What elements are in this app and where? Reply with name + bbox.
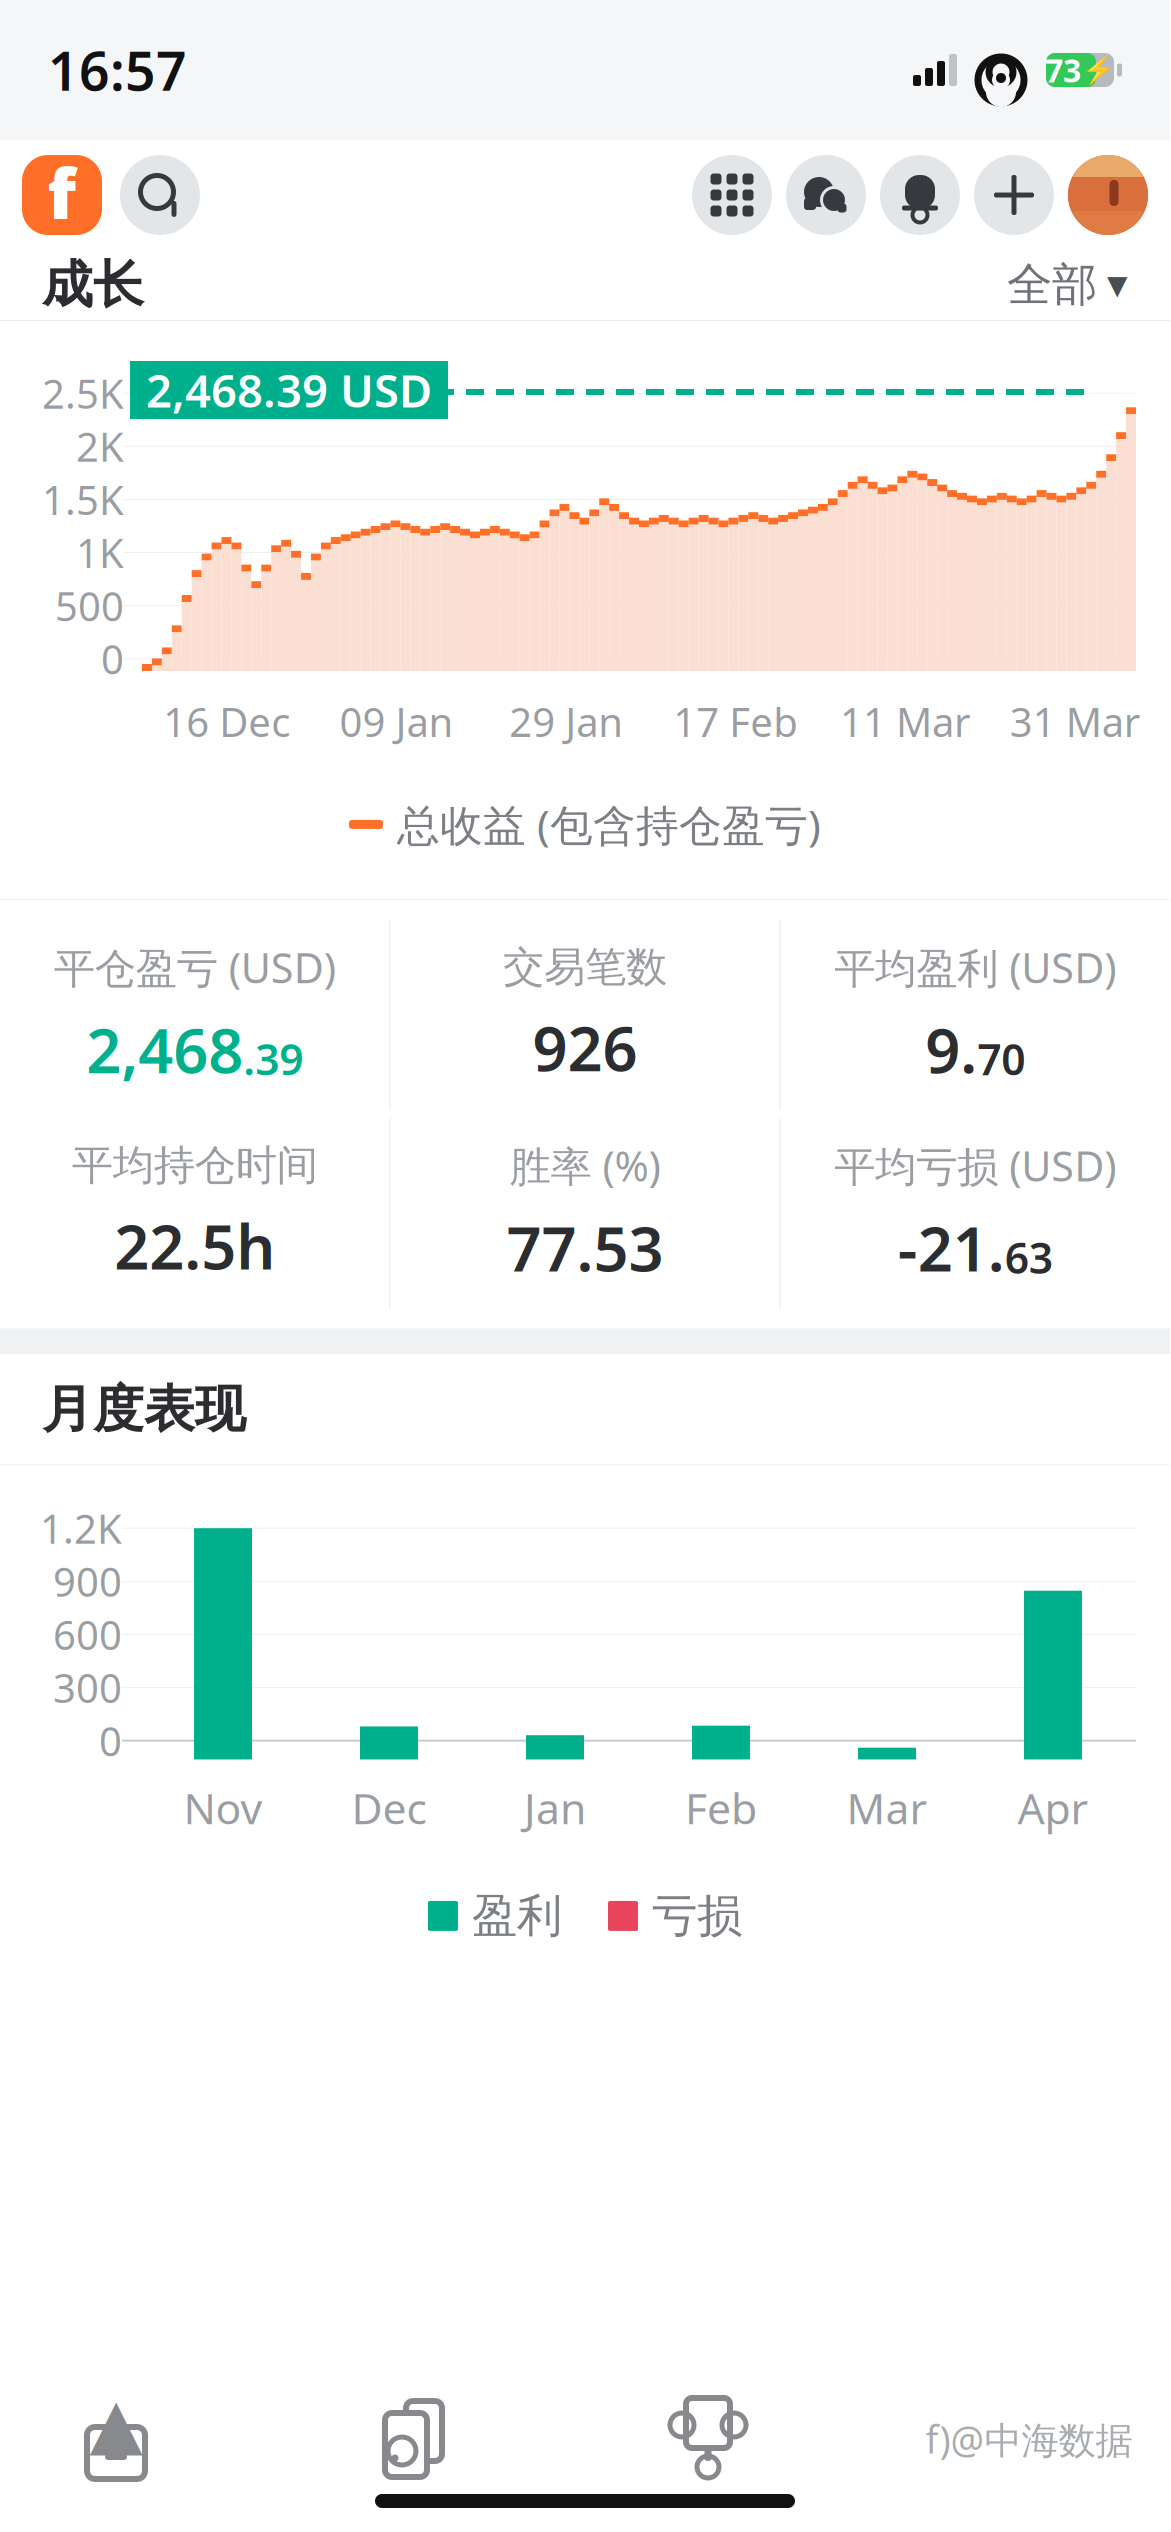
staticText: 1.2K (40, 1502, 122, 1555)
staticText: 总收益 (包含持仓盈亏) (397, 796, 821, 853)
staticText: 亏损 (652, 1888, 742, 1944)
staticText: 2K (76, 420, 124, 473)
staticText: 73 (1045, 49, 1081, 91)
button[interactable]: Search (120, 155, 200, 235)
staticText: 17 Feb (673, 695, 798, 748)
staticText: Jan (524, 1779, 586, 1836)
staticText: 11 Mar (840, 695, 971, 748)
staticText: 16 Dec (163, 695, 290, 748)
button[interactable]: Home (22, 149, 102, 241)
staticText: Nov (183, 1779, 262, 1836)
staticText: 300 (53, 1661, 122, 1714)
staticText: Dec (351, 1779, 426, 1836)
staticText: f (47, 146, 76, 238)
staticText: 09 Jan (339, 695, 453, 748)
staticText: 交易笔数 (503, 942, 667, 993)
button[interactable]: Messages (786, 155, 866, 235)
button[interactable]: Rankings (618, 2394, 798, 2484)
staticText: 22.5h (114, 1205, 275, 1286)
staticText: 平均持仓时间 (72, 1140, 318, 1191)
staticText: Mar (846, 1779, 927, 1836)
staticText: Apr (1017, 1779, 1088, 1836)
staticText: 全部 (1007, 257, 1097, 313)
staticText: 0 (99, 1714, 122, 1767)
staticText: 77.53 (506, 1207, 663, 1288)
staticText: 1K (76, 526, 124, 579)
staticText: 500 (55, 579, 124, 632)
staticText: 16:57 (48, 35, 187, 105)
staticText: 31 Mar (1010, 695, 1141, 748)
button[interactable]: 全部 (1007, 257, 1128, 313)
staticText: 平仓盈亏 (USD) (54, 940, 336, 995)
staticText: ▲ (89, 2384, 142, 2462)
staticText: 70 (977, 1030, 1025, 1087)
button[interactable]: Notifications (880, 155, 960, 235)
staticText: 600 (53, 1608, 122, 1661)
staticText: 63 (1005, 1229, 1053, 1285)
staticText: ⚡ (1082, 55, 1115, 85)
button[interactable]: Home (26, 2394, 206, 2484)
staticText: 2,468 (86, 1009, 243, 1090)
button[interactable]: Apps (692, 155, 772, 235)
button[interactable]: Profile (1068, 155, 1148, 235)
staticText: 成长 (42, 254, 144, 316)
button[interactable]: Create (974, 155, 1054, 235)
staticText: 盈利 (472, 1888, 562, 1944)
staticText: 9. (925, 1009, 977, 1090)
staticText: f)@中海数据 (925, 2414, 1132, 2464)
staticText: 月度表现 (42, 1378, 246, 1440)
staticText: 胜率 (%) (509, 1138, 660, 1193)
staticText: 900 (53, 1555, 122, 1608)
staticText: 1.5K (42, 473, 124, 526)
staticText: .39 (243, 1030, 303, 1087)
staticText: 平均盈利 (USD) (834, 940, 1116, 995)
staticText: 2,468.39 USD (146, 360, 432, 420)
staticText: 2.5K (42, 367, 124, 420)
staticText: Feb (685, 1779, 757, 1836)
staticText: 926 (532, 1007, 637, 1088)
staticText: ▼ (1107, 270, 1128, 300)
button[interactable]: Signals (322, 2394, 502, 2484)
staticText: -21. (898, 1207, 1005, 1288)
staticText: 平均亏损 (USD) (834, 1138, 1116, 1193)
staticText: 29 Jan (509, 695, 623, 748)
staticText: 0 (101, 632, 124, 685)
